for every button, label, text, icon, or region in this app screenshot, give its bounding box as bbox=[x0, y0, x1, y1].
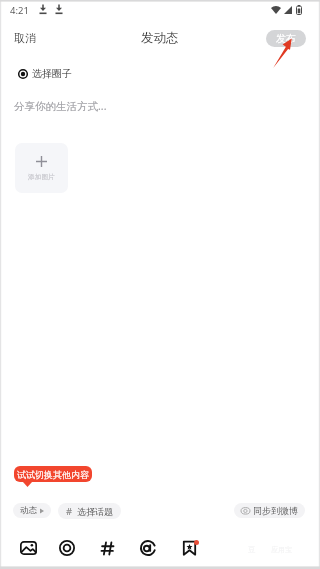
button[interactable]: 动态 bbox=[13, 503, 51, 518]
staticText: 动态 bbox=[20, 505, 37, 516]
staticText: # bbox=[66, 505, 73, 517]
button[interactable]: 图片 bbox=[15, 535, 41, 561]
staticText: 试试切换其他内容 bbox=[17, 469, 89, 480]
button[interactable]: # bbox=[58, 503, 121, 519]
staticText: 分享你的生活方式... bbox=[14, 99, 107, 113]
button[interactable]: 添加图片 bbox=[15, 143, 68, 193]
staticText: 豆 bbox=[248, 545, 256, 554]
button[interactable]: 收藏 bbox=[176, 535, 202, 561]
staticText: 4:21 bbox=[10, 4, 29, 17]
staticText: 应用宝 bbox=[271, 545, 292, 554]
button[interactable]: 取消 bbox=[6, 28, 44, 48]
button[interactable]: 拍摄 bbox=[54, 535, 80, 561]
button[interactable]: 发布 bbox=[266, 30, 306, 47]
button[interactable]: 话题 bbox=[94, 535, 120, 561]
staticText: 选择圈子 bbox=[32, 67, 72, 80]
staticText: 发布 bbox=[276, 32, 296, 45]
staticText: 发动态 bbox=[141, 30, 179, 46]
staticText: 选择话题 bbox=[77, 506, 113, 517]
button[interactable]: 选择圈子 bbox=[18, 65, 76, 82]
staticText: 同步到微博 bbox=[253, 505, 298, 516]
button[interactable]: 提到 bbox=[135, 535, 161, 561]
staticText: 添加图片 bbox=[28, 173, 55, 181]
button[interactable]: 试试切换其他内容 bbox=[14, 466, 92, 482]
staticText: 取消 bbox=[14, 31, 36, 45]
button[interactable]: 同步到微博 bbox=[234, 503, 305, 518]
